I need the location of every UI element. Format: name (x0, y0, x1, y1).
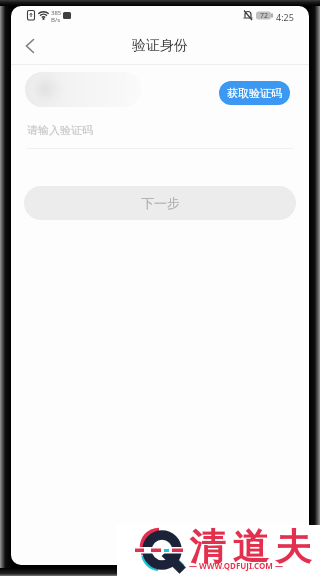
staticText: 请输入验证码 (27, 123, 93, 137)
button[interactable]: 下一步 (24, 186, 296, 220)
staticText: 72 (260, 11, 269, 21)
staticText: 4:25 (276, 11, 294, 23)
staticText: 385 (51, 9, 62, 17)
staticText: 验证身份 (132, 37, 188, 55)
button[interactable]: 请输入验证码 (27, 116, 293, 149)
staticText: 下一步 (141, 195, 180, 211)
staticText: 清道夫 (186, 524, 315, 569)
staticText: B/s (51, 16, 61, 24)
staticText: 获取验证码 (227, 86, 282, 100)
staticText: — WWW.QDFUJI.COM — (189, 560, 283, 571)
button[interactable]: 获取验证码 (219, 81, 290, 105)
button[interactable] (19, 35, 41, 57)
